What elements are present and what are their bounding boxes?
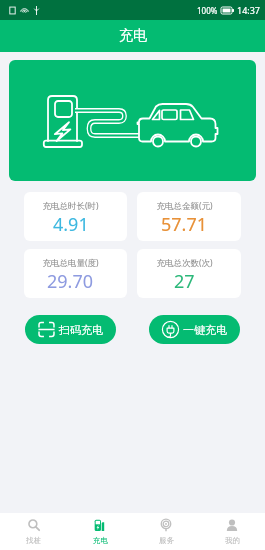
staticText: 找桩 <box>26 536 41 545</box>
button[interactable]: 充电总时长(时) <box>24 192 127 241</box>
staticText: 充电 <box>119 27 147 45</box>
button[interactable]: 充电 <box>67 513 133 550</box>
staticText: 充电总金额(元) <box>156 200 213 212</box>
button[interactable]: 我的 <box>199 513 265 550</box>
staticText: 充电总时长(时) <box>42 200 99 212</box>
button[interactable]: 充电总次数(次) <box>137 249 241 298</box>
staticText: 27 <box>174 269 195 294</box>
staticText: 100% <box>197 5 218 16</box>
button[interactable]: 服务 <box>133 513 199 550</box>
staticText: 29.70 <box>47 269 94 294</box>
staticText: 4.91 <box>53 212 89 237</box>
staticText: 充电总次数(次) <box>156 257 213 269</box>
staticText: 一键充电 <box>183 323 227 337</box>
staticText: 充电 <box>93 536 108 545</box>
staticText: 57.71 <box>161 212 208 237</box>
staticText: 服务 <box>159 536 174 545</box>
button[interactable]: 充电总金额(元) <box>137 192 241 241</box>
staticText: 我的 <box>225 536 240 545</box>
button[interactable]: 扫码充电 <box>25 315 116 344</box>
staticText: 14:37 <box>237 4 261 16</box>
button[interactable]: 一键充电 <box>149 315 240 344</box>
button[interactable]: 找桩 <box>0 513 67 550</box>
button[interactable]: 充电总电量(度) <box>24 249 127 298</box>
staticText: 扫码充电 <box>59 323 103 337</box>
staticText: 充电总电量(度) <box>42 257 99 269</box>
